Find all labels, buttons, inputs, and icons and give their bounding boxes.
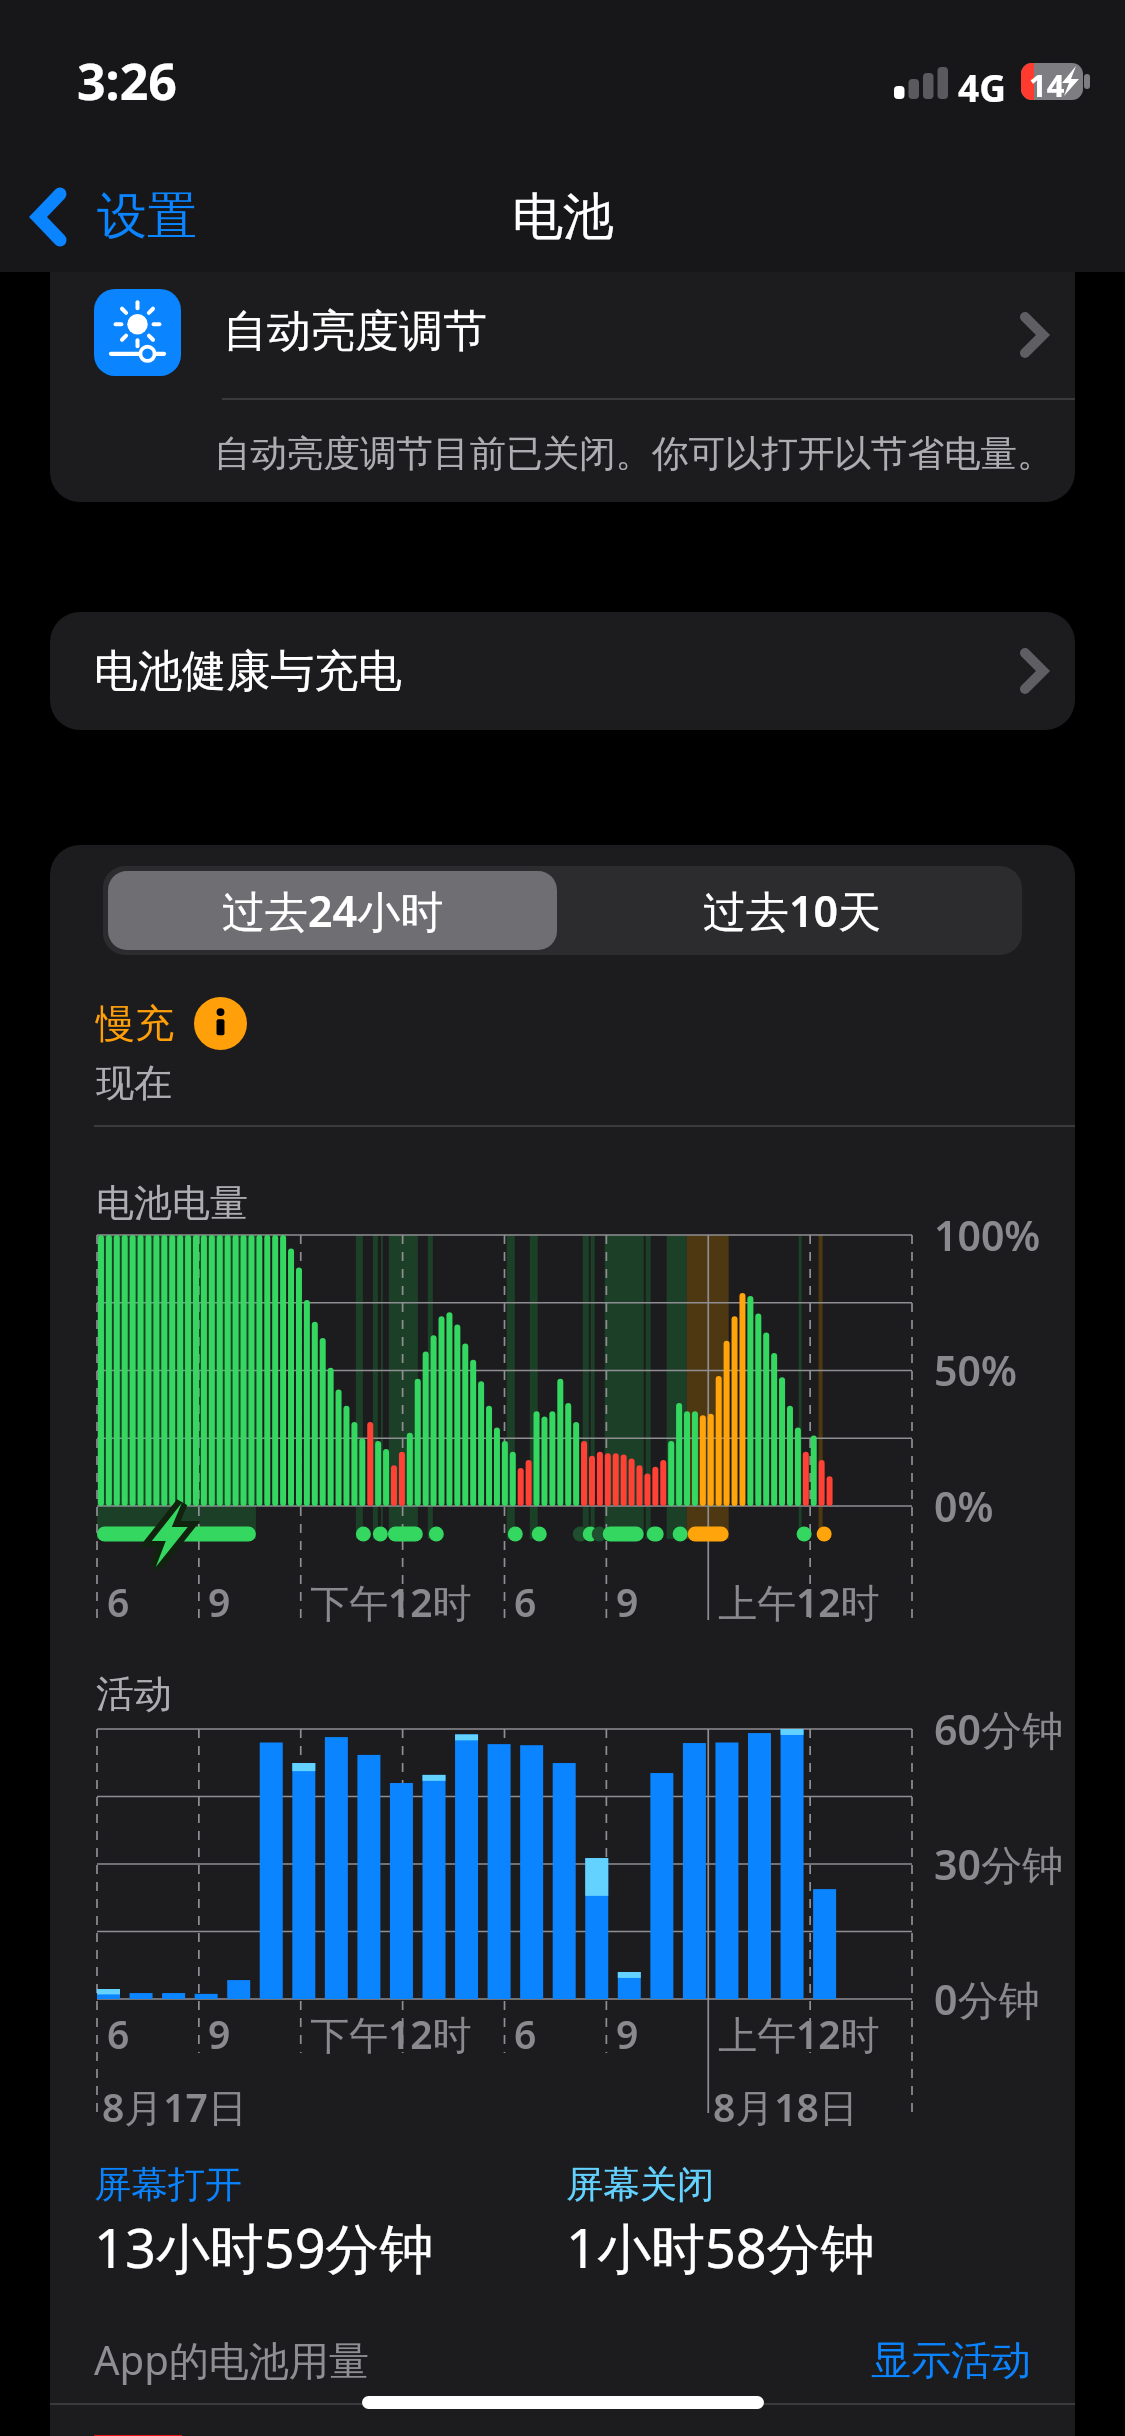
button[interactable]: 自动亮度调节	[50, 272, 1075, 398]
staticText: 8月18日	[713, 2080, 858, 2133]
staticText: App的电池用量	[94, 2332, 369, 2387]
staticText: 电池电量	[96, 1179, 248, 1227]
staticText: 0%	[934, 1478, 994, 1534]
staticText: 上午12时	[718, 1575, 880, 1628]
staticText: 下午12时	[310, 2007, 472, 2060]
staticText: 电池	[512, 185, 614, 249]
staticText: 屏幕打开	[94, 2161, 242, 2208]
staticText: 上午12时	[718, 2007, 880, 2060]
other: Open	[1021, 312, 1047, 358]
staticText: 60分钟	[934, 1701, 1063, 1757]
staticText: 电池健康与充电	[94, 644, 402, 699]
staticText: 活动	[96, 1670, 172, 1718]
staticText: 自动亮度调节	[223, 304, 487, 359]
staticText: 0分钟	[934, 1971, 1040, 2027]
staticText: 设置	[97, 185, 197, 248]
staticText: 9	[208, 1575, 231, 1628]
button[interactable]: 显示活动	[871, 2335, 1031, 2385]
button[interactable]: 电池健康与充电	[50, 612, 1075, 730]
staticText: 14	[1029, 64, 1065, 106]
staticText: 3:26	[77, 47, 177, 115]
staticText: 下午12时	[310, 1575, 472, 1628]
other: Open	[1021, 648, 1047, 694]
staticText: 现在	[96, 1059, 172, 1107]
staticText: 屏幕关闭	[566, 2161, 714, 2208]
staticText: 13小时59分钟	[94, 2210, 434, 2284]
staticText: 9	[616, 2007, 639, 2060]
staticText: 100%	[934, 1207, 1041, 1263]
staticText: 6	[107, 1575, 130, 1628]
staticText: 过去24小时	[222, 881, 444, 940]
staticText: 9	[208, 2007, 231, 2060]
staticText: 50%	[934, 1342, 1017, 1398]
staticText: 过去10天	[703, 881, 882, 940]
staticText: 6	[514, 1575, 537, 1628]
button[interactable]: 过去24小时	[108, 871, 557, 950]
staticText: 4G	[958, 62, 1006, 112]
staticText: 30分钟	[934, 1836, 1063, 1892]
staticText: 9	[616, 1575, 639, 1628]
staticText: 6	[107, 2007, 130, 2060]
staticText: 8月17日	[102, 2080, 247, 2133]
button[interactable]: Back	[24, 175, 205, 258]
staticText: 1小时58分钟	[566, 2210, 875, 2284]
staticText: 慢充	[96, 999, 174, 1048]
staticText: 自动亮度调节目前已关闭。你可以打开以节省电量。	[214, 431, 1054, 477]
button[interactable]: 过去10天	[562, 866, 1022, 955]
other: Back	[32, 188, 66, 246]
staticText: 6	[514, 2007, 537, 2060]
